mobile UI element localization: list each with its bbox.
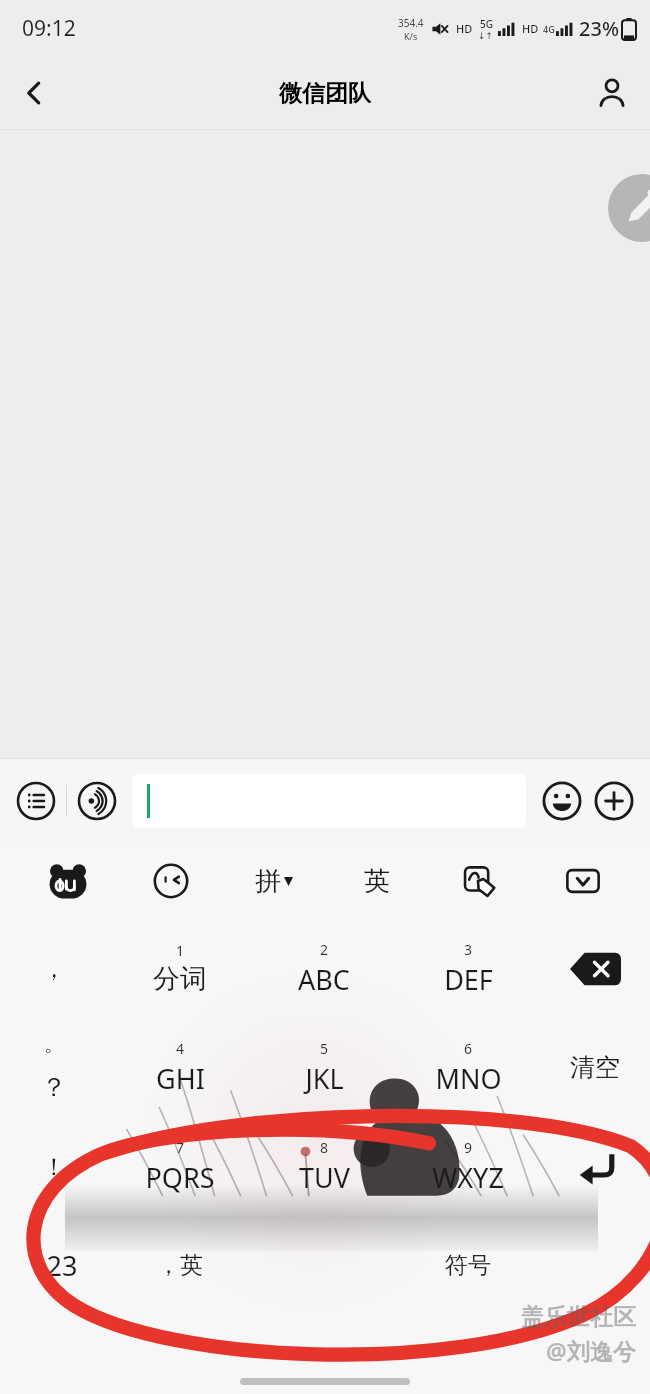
button[interactable]: Sticker	[119, 843, 222, 919]
staticText: ，	[42, 954, 66, 984]
button[interactable]: 2	[252, 919, 396, 1018]
button[interactable]: 清空	[540, 1018, 650, 1117]
button[interactable]: 5	[252, 1018, 396, 1117]
staticText: ！	[42, 1152, 66, 1182]
button[interactable]	[133, 774, 526, 828]
staticText: 4G	[543, 23, 555, 35]
staticText: WXYZ	[432, 1159, 504, 1196]
button[interactable]: 1	[108, 919, 252, 1018]
staticText: 09:12	[22, 14, 76, 43]
button[interactable]: 123	[0, 1216, 108, 1315]
button[interactable]: ，英	[108, 1216, 252, 1315]
button[interactable]: Menu	[10, 775, 62, 827]
staticText: 符号	[445, 1251, 491, 1280]
staticText: MNO	[435, 1060, 502, 1097]
button[interactable]: 8	[252, 1117, 396, 1216]
staticText: 7	[176, 1138, 185, 1157]
button[interactable]: 6	[396, 1018, 540, 1117]
staticText: 。	[44, 1032, 64, 1057]
button[interactable]: Baidu input	[16, 843, 119, 919]
staticText: 2	[320, 940, 329, 959]
staticText: HD	[522, 21, 539, 36]
staticText: 微信团队	[279, 79, 371, 108]
staticText: 354.4	[398, 16, 424, 30]
button[interactable]: 3	[396, 919, 540, 1018]
button[interactable]: 符号	[396, 1216, 540, 1315]
button[interactable]: Edit	[608, 174, 650, 242]
staticText: 5	[320, 1039, 329, 1058]
staticText: GHI	[156, 1060, 205, 1097]
button[interactable]: Emoji	[536, 775, 588, 827]
button[interactable]: 。	[0, 1018, 108, 1117]
button[interactable]	[252, 1216, 396, 1315]
button[interactable]: Back	[8, 67, 60, 119]
button[interactable]: Contact info	[586, 67, 638, 119]
staticText: 6	[464, 1039, 473, 1058]
staticText: TUV	[299, 1159, 350, 1196]
staticText: 盖乐世社区	[521, 1303, 636, 1332]
button[interactable]: 4	[108, 1018, 252, 1117]
button[interactable]: Enter	[540, 1117, 650, 1216]
button[interactable]: Backspace	[540, 919, 650, 1018]
button[interactable]	[540, 1216, 650, 1315]
button[interactable]: Voice	[71, 775, 123, 827]
staticText: ，英	[157, 1251, 203, 1280]
staticText: 分词	[153, 962, 207, 996]
other: Backspace	[569, 951, 621, 987]
staticText: HD	[456, 21, 473, 36]
staticText: PQRS	[145, 1159, 215, 1196]
staticText: 拼	[255, 865, 281, 898]
staticText: 1	[176, 941, 185, 960]
staticText: 8	[320, 1138, 329, 1157]
staticText: ？	[41, 1071, 67, 1104]
staticText: JKL	[305, 1060, 344, 1097]
button[interactable]: 拼	[222, 843, 325, 919]
staticText: @刘逸兮	[546, 1335, 636, 1366]
other: Enter	[575, 1147, 615, 1187]
button[interactable]: 7	[108, 1117, 252, 1216]
staticText: 清空	[570, 1052, 620, 1083]
staticText: K/s	[404, 30, 418, 42]
staticText: 123	[31, 1247, 78, 1284]
button[interactable]: More	[588, 775, 640, 827]
button[interactable]: ！	[0, 1117, 108, 1216]
staticText: ABC	[298, 961, 350, 998]
staticText: 4	[176, 1039, 185, 1058]
staticText: 英	[364, 865, 390, 898]
staticText: DEF	[444, 961, 493, 998]
button[interactable]: Hide keyboard	[531, 843, 634, 919]
button[interactable]: 9	[396, 1117, 540, 1216]
staticText: ↓↑	[478, 31, 494, 41]
button[interactable]: ，	[0, 919, 108, 1018]
button[interactable]: Handwriting	[428, 843, 531, 919]
button[interactable]: 英	[325, 843, 428, 919]
staticText: 23%	[579, 15, 619, 42]
staticText: 3	[464, 940, 473, 959]
staticText: 9	[464, 1138, 473, 1157]
staticText: 5G	[480, 17, 493, 31]
